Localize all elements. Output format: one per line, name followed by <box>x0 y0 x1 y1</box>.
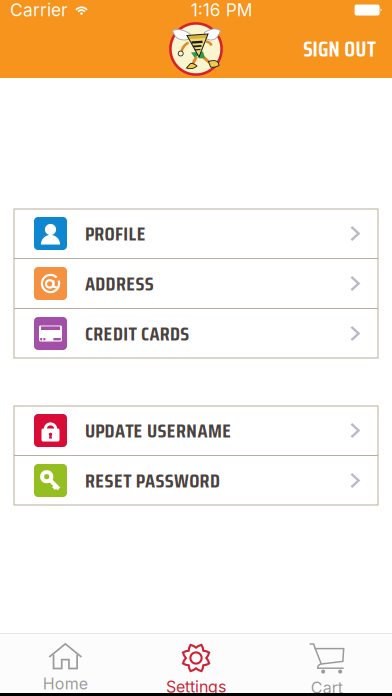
button[interactable]: PROFILE <box>14 209 378 258</box>
staticText: Home <box>43 674 88 693</box>
button[interactable]: Cart <box>261 634 392 693</box>
staticText: Carrier <box>10 0 68 20</box>
staticText: PROFILE <box>85 218 146 249</box>
button[interactable]: SIGN OUT <box>287 20 392 78</box>
staticText: UPDATE USERNAME <box>85 415 231 446</box>
staticText: RESET PASSWORD <box>85 465 220 496</box>
button[interactable]: UPDATE USERNAME <box>14 406 378 455</box>
staticText: Cart <box>311 678 343 696</box>
button[interactable]: RESET PASSWORD <box>14 456 378 505</box>
staticText: Settings <box>166 677 226 696</box>
button[interactable]: CREDIT CARDS <box>14 309 378 358</box>
staticText: 1:16 PM <box>191 0 253 20</box>
button[interactable]: Home <box>0 634 131 693</box>
button[interactable]: ADDRESS <box>14 259 378 308</box>
staticText: SIGN OUT <box>303 32 376 66</box>
button[interactable]: Settings <box>131 634 261 693</box>
staticText: CREDIT CARDS <box>85 318 189 349</box>
staticText: ADDRESS <box>85 268 154 299</box>
